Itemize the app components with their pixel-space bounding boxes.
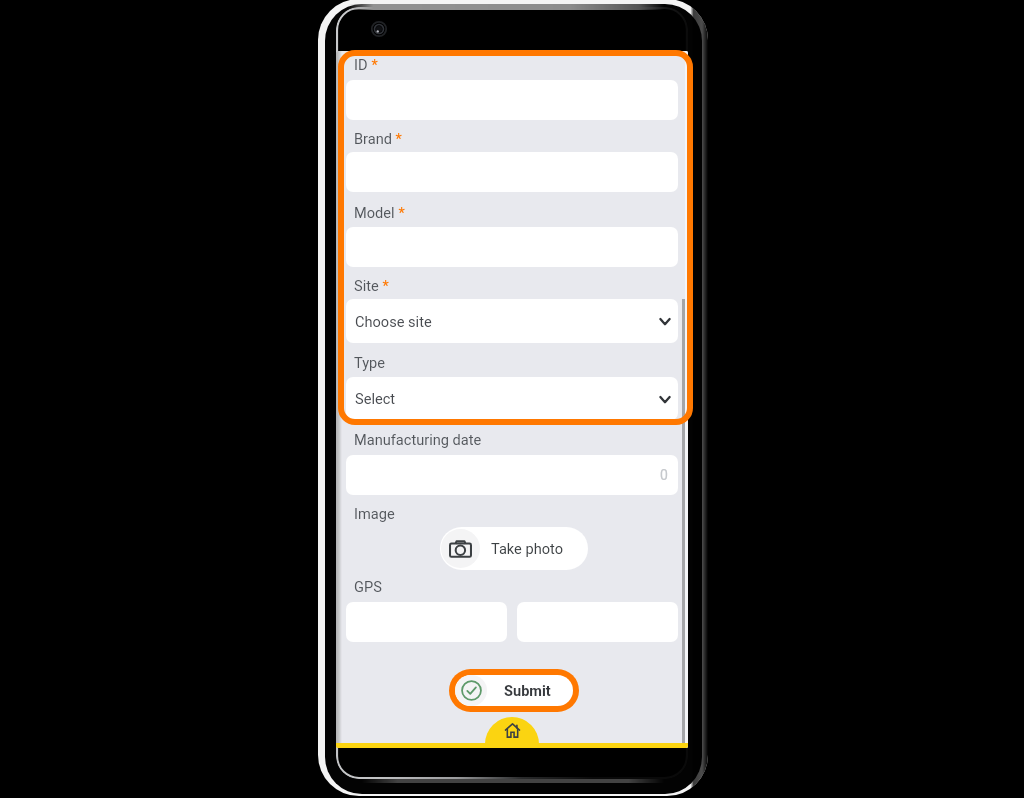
button[interactable]: Submit bbox=[455, 675, 573, 706]
staticText: Select bbox=[355, 390, 658, 407]
staticText: GPS bbox=[354, 578, 382, 595]
staticText: Choose site bbox=[355, 313, 658, 330]
staticText: Model bbox=[354, 204, 395, 221]
button[interactable]: Home bbox=[485, 717, 539, 748]
staticText: * bbox=[368, 56, 378, 73]
staticText: ID bbox=[354, 56, 368, 73]
staticText: Brand bbox=[354, 130, 392, 147]
staticText: * bbox=[395, 204, 405, 221]
staticText: Site bbox=[354, 277, 379, 294]
staticText: Type bbox=[354, 354, 386, 371]
staticText: Take photo bbox=[491, 540, 563, 557]
button[interactable]: Take photo bbox=[440, 527, 588, 570]
staticText: * bbox=[392, 130, 402, 147]
staticText: Image bbox=[354, 505, 395, 522]
staticText: Manufacturing date bbox=[354, 431, 482, 448]
staticText: 0 bbox=[660, 467, 668, 483]
button[interactable]: Choose site bbox=[346, 299, 678, 343]
button[interactable]: Select bbox=[346, 377, 678, 420]
staticText: * bbox=[379, 277, 389, 294]
staticText: Submit bbox=[504, 682, 551, 699]
